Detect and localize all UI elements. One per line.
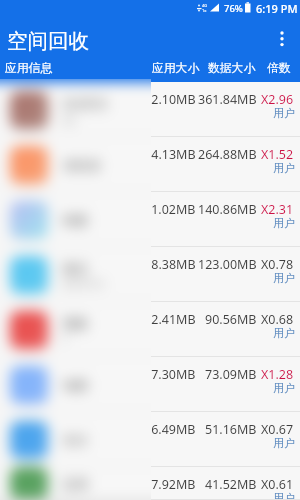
staticText: 支付 xyxy=(54,432,80,448)
staticText: 76% xyxy=(224,2,243,15)
staticText: 视频 xyxy=(62,315,88,331)
staticText: 73.09MB xyxy=(205,366,257,383)
button[interactable]: 支付 xyxy=(0,412,300,467)
button[interactable]: More options xyxy=(264,16,300,52)
staticText: ll xyxy=(54,331,60,345)
staticText: 数据大小 xyxy=(208,61,256,76)
staticText: 地图 xyxy=(62,377,88,393)
staticText: 61.02MB xyxy=(144,201,196,218)
staticText: X0.61 xyxy=(261,476,294,493)
staticText: 用户 xyxy=(273,106,295,120)
staticText: X0.78 xyxy=(261,256,294,273)
staticText: 应用 xyxy=(62,476,88,492)
staticText: QQ音乐 xyxy=(54,94,101,112)
staticText: 应用大小 xyxy=(152,61,200,76)
staticText: 158.38MB xyxy=(137,256,196,273)
staticText: 57.30MB xyxy=(144,366,196,383)
staticText: 123.00MB xyxy=(198,256,257,273)
staticText: X1.28 xyxy=(261,366,294,383)
staticText: 应用信息 xyxy=(5,61,53,76)
button[interactable]: QQ音乐 xyxy=(0,82,300,137)
staticText: 微信 xyxy=(62,260,88,276)
staticText: 支付 xyxy=(62,432,88,448)
staticText: 用户 xyxy=(273,381,295,395)
staticText: 67.92MB xyxy=(144,476,196,493)
staticText: 浏览器 xyxy=(62,157,101,173)
button[interactable]: 地图 xyxy=(0,357,300,412)
staticText: 用户 xyxy=(273,436,295,450)
staticText: qq xyxy=(54,112,67,126)
staticText: X2.96 xyxy=(261,91,294,108)
staticText: QQ音乐 xyxy=(62,94,109,112)
staticText: 76.49MB xyxy=(144,421,196,438)
staticText: 140.86MB xyxy=(198,201,257,218)
staticText: 122.10MB xyxy=(137,91,196,108)
staticText: 361.84MB xyxy=(198,91,257,108)
button[interactable]: 微信 xyxy=(0,247,300,302)
staticText: 用户 xyxy=(273,326,295,340)
staticText: 4G 1x xyxy=(202,3,208,13)
staticText: 132.41MB xyxy=(137,311,196,328)
staticText: 174.13MB xyxy=(137,146,196,163)
staticText: 用户 xyxy=(273,161,295,175)
staticText: 空间回收 xyxy=(7,28,89,54)
staticText: 地图 xyxy=(54,377,80,393)
staticText: 微信 xyxy=(54,260,80,276)
staticText: 浏览器 xyxy=(54,157,93,173)
staticText: yGphone xyxy=(54,276,97,290)
staticText: 6:19 PM xyxy=(256,1,298,16)
staticText: X0.67 xyxy=(261,421,294,438)
staticText: 应用 xyxy=(54,476,80,492)
staticText: 视频 xyxy=(54,315,80,331)
staticText: X0.68 xyxy=(261,311,294,328)
button[interactable]: 视频 xyxy=(0,302,300,357)
staticText: 90.56MB xyxy=(205,311,257,328)
staticText: 倍数 xyxy=(267,61,291,76)
staticText: 264.88MB xyxy=(198,146,257,163)
staticText: X2.31 xyxy=(261,201,294,218)
staticText: ll xyxy=(62,331,68,345)
button[interactable]: 应用 xyxy=(0,467,300,500)
button[interactable]: 相册 xyxy=(0,192,300,247)
staticText: yGphone xyxy=(62,276,105,290)
staticText: X1.52 xyxy=(261,146,294,163)
button[interactable]: 浏览器 xyxy=(0,137,300,192)
staticText: 用户 xyxy=(273,216,295,230)
staticText: 相册 xyxy=(54,212,80,228)
staticText: 51.16MB xyxy=(205,421,257,438)
staticText: 用户 xyxy=(273,491,295,500)
staticText: 相册 xyxy=(62,212,88,228)
staticText: 41.52MB xyxy=(205,476,257,493)
staticText: 用户 xyxy=(273,271,295,285)
